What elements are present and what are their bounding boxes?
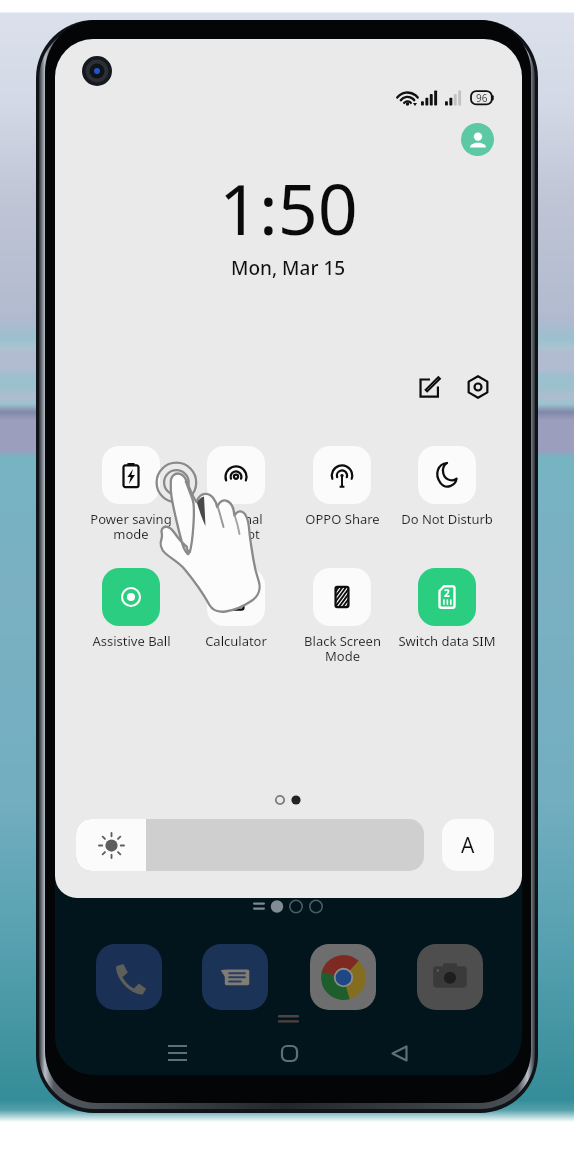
button[interactable]: Black Screen Mode	[290, 568, 394, 665]
button[interactable]: Edit quick settings	[408, 365, 452, 409]
staticText: Assistive Ball	[92, 632, 171, 650]
button[interactable]: App icon	[417, 944, 483, 1010]
button[interactable]: App icon	[310, 944, 376, 1010]
staticText: Black Screen Mode	[304, 632, 381, 665]
button[interactable]: Settings	[456, 365, 500, 409]
staticText: 1:50	[219, 160, 358, 255]
staticText: OPPO Share	[305, 510, 380, 528]
button[interactable]: Personal hotspot	[184, 446, 288, 543]
button[interactable]: Home	[267, 1035, 311, 1071]
staticText: Switch data SIM	[398, 632, 496, 650]
button[interactable]: App icon	[202, 944, 268, 1010]
staticText: A	[461, 831, 475, 860]
button[interactable]: Power saving mode	[79, 446, 183, 543]
button[interactable]: Do Not Disturb	[395, 446, 499, 528]
button[interactable]: Brightness	[76, 819, 424, 871]
button[interactable]: Assistive Ball	[79, 568, 183, 650]
staticText: Power saving mode	[90, 510, 172, 543]
button[interactable]: 2	[395, 568, 499, 650]
button[interactable]: User profile	[461, 123, 494, 156]
button[interactable]: Recent apps	[155, 1035, 199, 1071]
button[interactable]: App icon	[96, 944, 162, 1010]
staticText: 2	[444, 586, 450, 600]
button[interactable]: Auto brightness	[442, 819, 494, 871]
staticText: Personal hotspot	[209, 510, 263, 543]
staticText: Calculator	[205, 632, 267, 650]
button[interactable]: Back	[377, 1035, 421, 1071]
staticText: 96	[476, 91, 488, 105]
button[interactable]: Calculator	[184, 568, 288, 650]
button[interactable]: OPPO Share	[290, 446, 394, 528]
staticText: Do Not Disturb	[401, 510, 493, 528]
staticText: Mon, Mar 15	[231, 255, 346, 281]
